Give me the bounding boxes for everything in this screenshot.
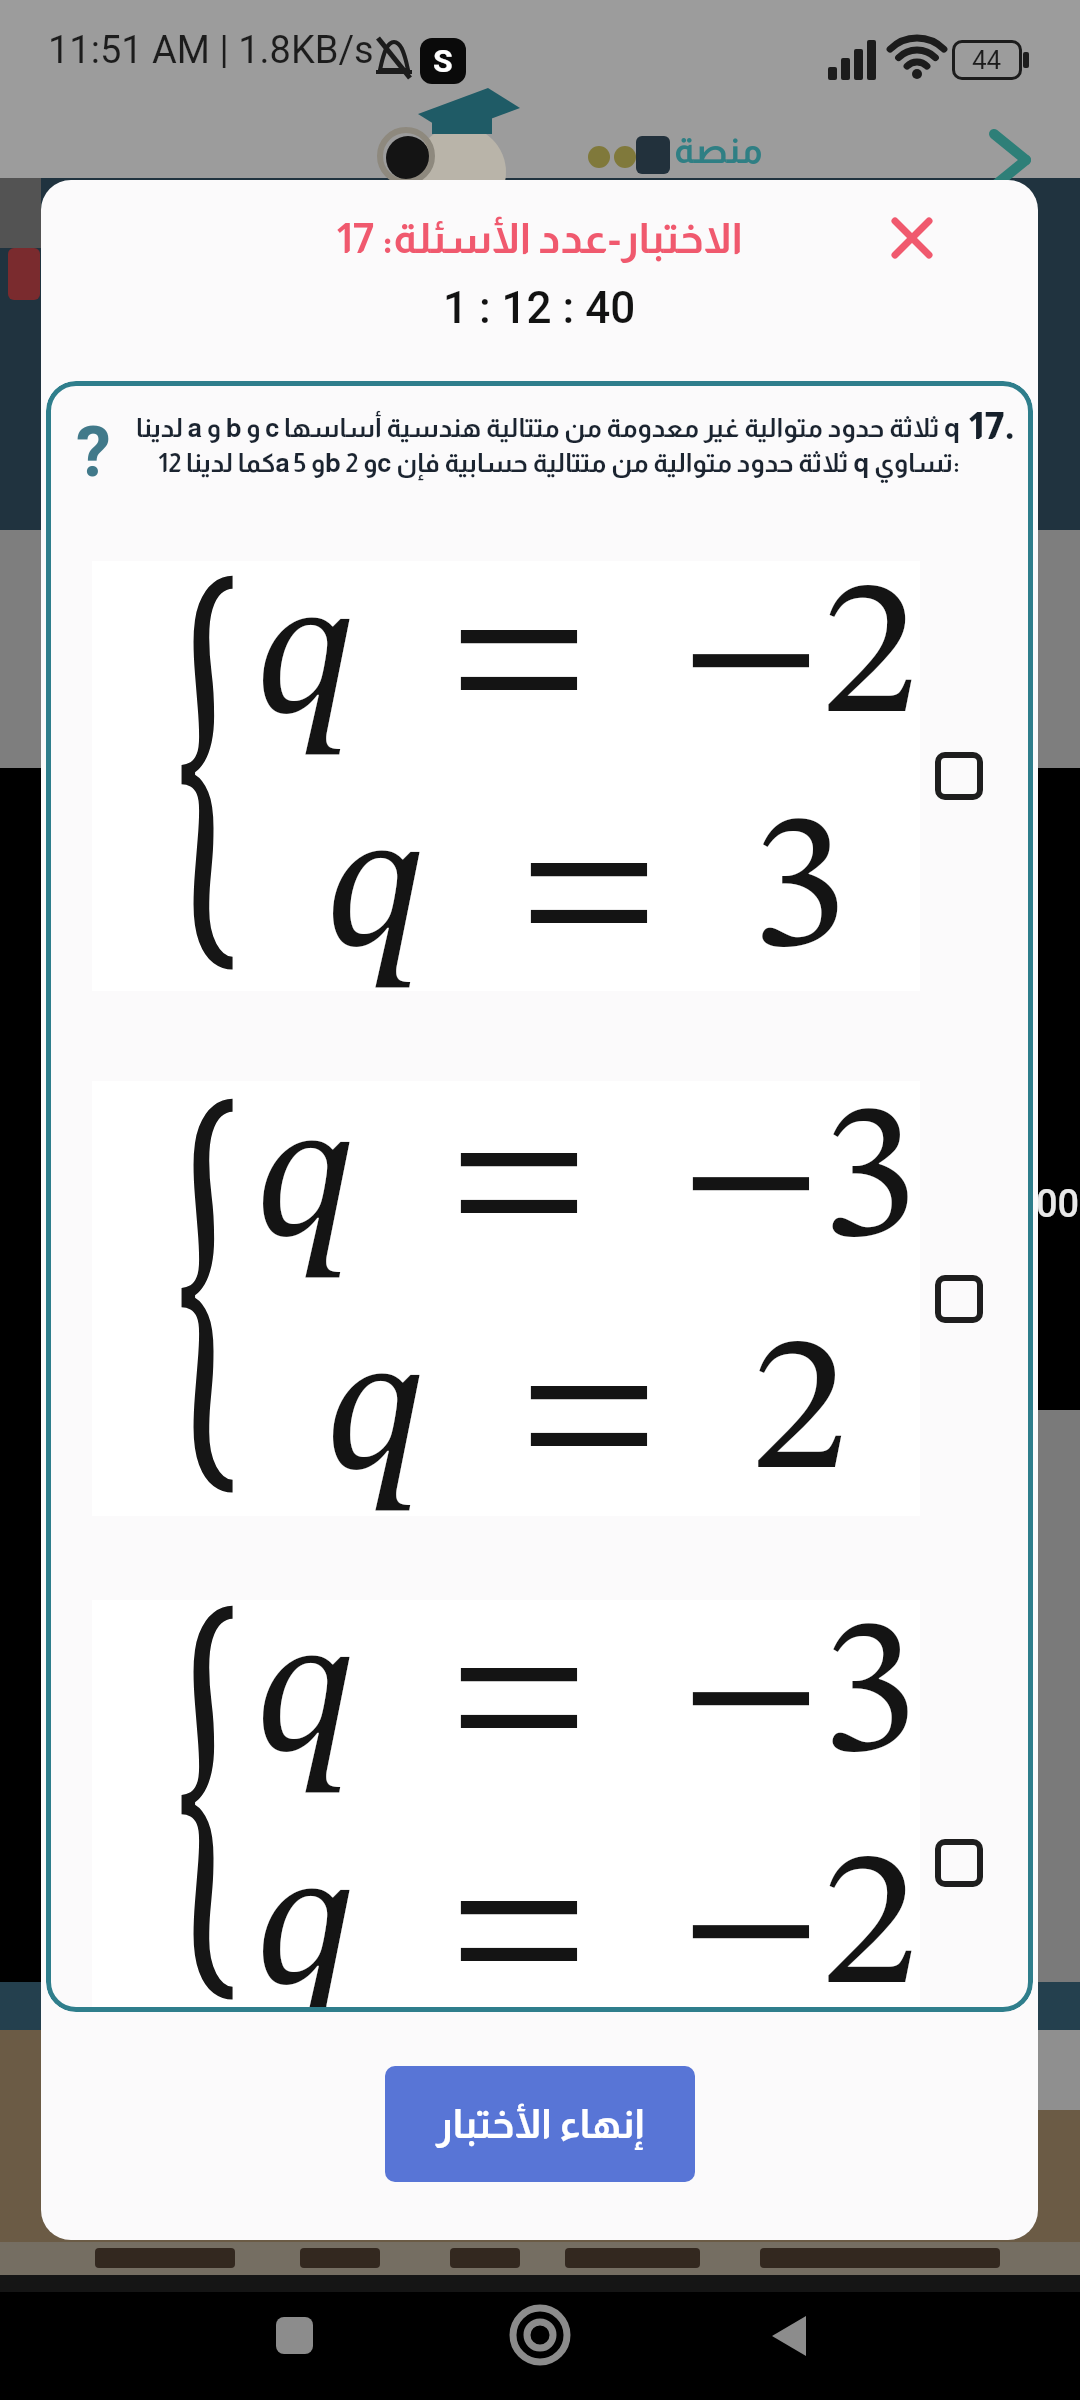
staticText: منصة	[674, 130, 763, 170]
button[interactable]	[935, 1839, 983, 1887]
staticText: لدينا a و b و c ثلاثة حدود متوالية غير م…	[125, 413, 960, 478]
staticText: 1 : 12 : 40	[443, 282, 636, 334]
button[interactable]: {	[92, 1081, 983, 1516]
staticText: q = −3	[256, 1600, 918, 1795]
staticText: 44	[972, 45, 1002, 75]
staticText: إنهاء الأختبار	[436, 2102, 644, 2147]
staticText: {	[176, 1592, 243, 2012]
button[interactable]: إنهاء الأختبار	[385, 2066, 695, 2182]
staticText: {	[176, 562, 243, 991]
staticText: q = −2	[256, 1833, 918, 2012]
button[interactable]	[935, 752, 983, 800]
staticText: الاختبار-عدد الأسئلة: 17	[336, 215, 743, 262]
staticText: 11:51 AM | 1.8KB/s	[48, 28, 374, 73]
staticText: q = 2	[326, 1318, 848, 1513]
button[interactable]	[893, 219, 931, 257]
staticText: S	[433, 42, 453, 80]
staticText: ?	[76, 411, 111, 493]
button[interactable]: {	[92, 561, 983, 991]
staticText: q = −3	[256, 1085, 918, 1280]
button[interactable]	[276, 2317, 313, 2354]
staticText: 00	[1036, 1182, 1080, 1227]
button[interactable]	[512, 2307, 568, 2363]
staticText: 17.	[968, 405, 1015, 447]
staticText: {	[176, 1085, 243, 1514]
button[interactable]	[768, 2314, 808, 2358]
button[interactable]	[935, 1275, 983, 1323]
button[interactable]: {	[92, 1600, 983, 2012]
staticText: q = 3	[326, 795, 848, 990]
staticText: q = −2	[256, 562, 918, 757]
